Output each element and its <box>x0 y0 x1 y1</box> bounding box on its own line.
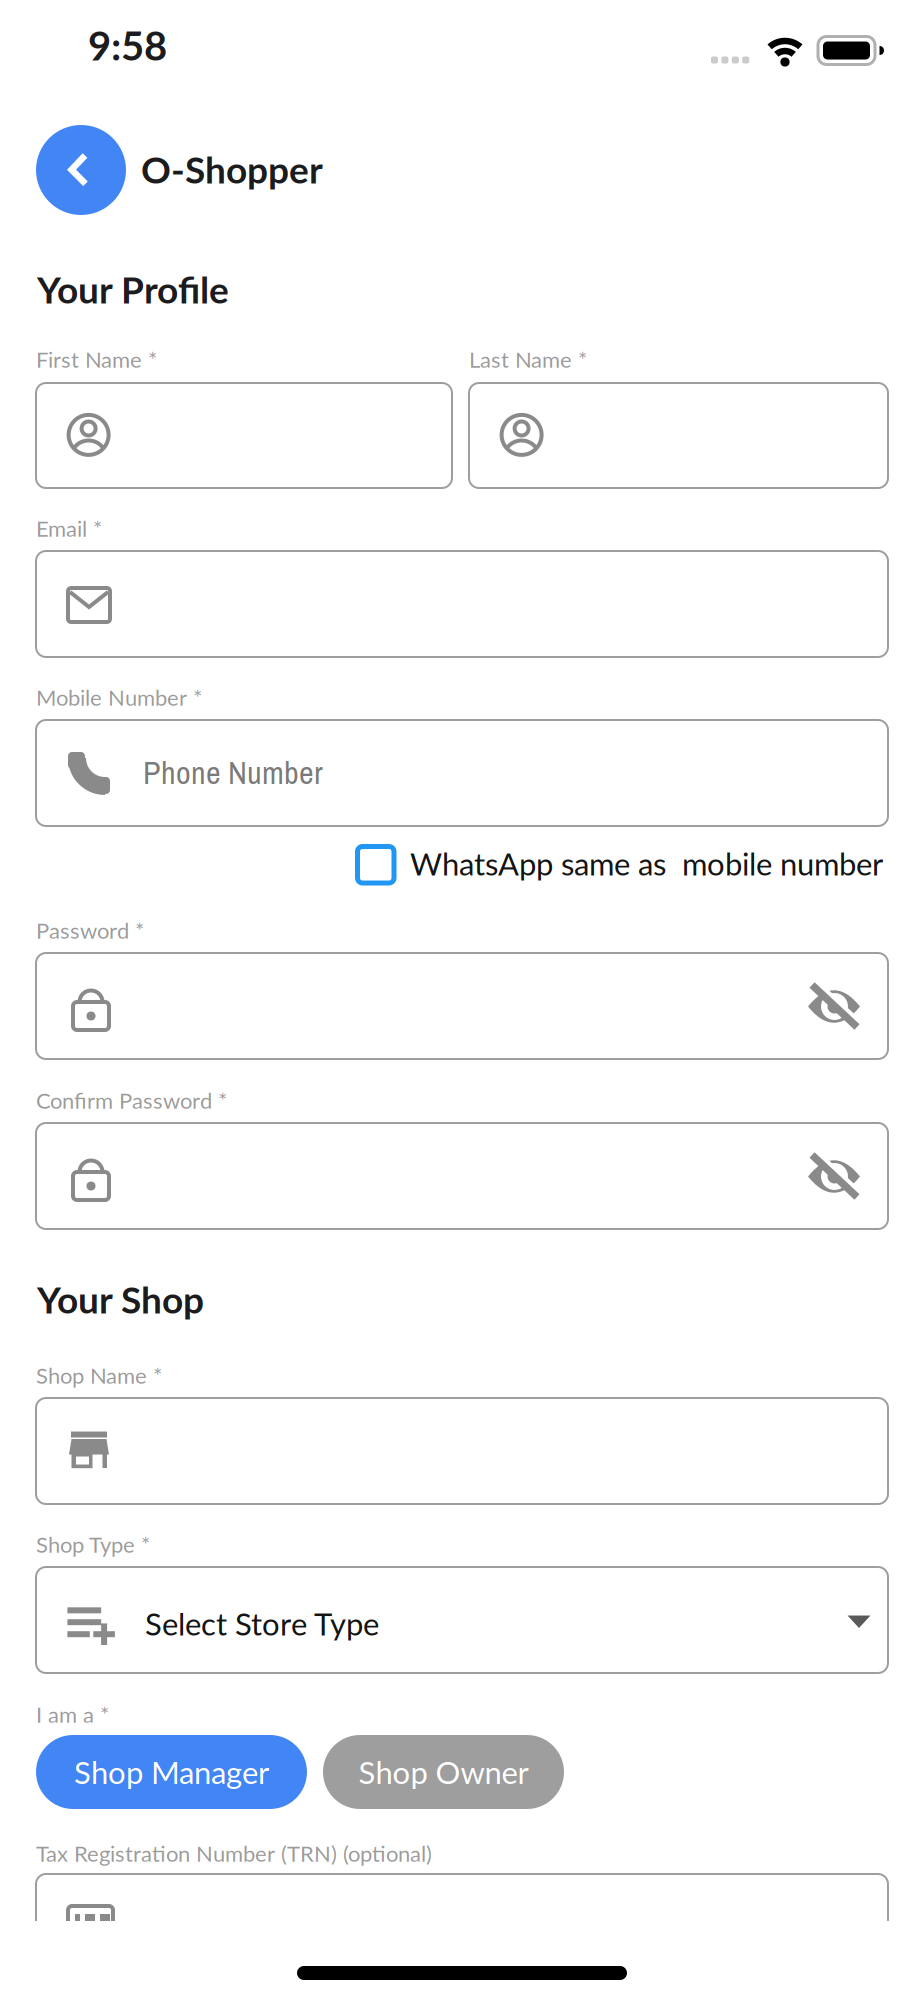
staticText: WhatsApp same as mobile number <box>410 845 883 882</box>
staticText: Shop Type * <box>36 1531 150 1557</box>
staticText: Phone Number <box>143 751 323 794</box>
staticText: Confirm Password * <box>36 1087 227 1113</box>
staticText: Shop Manager <box>74 1753 269 1791</box>
staticText: Mobile Number * <box>36 684 202 710</box>
staticText: Your Shop <box>37 1277 204 1321</box>
staticText: Last Name * <box>469 346 587 372</box>
staticText: Your Profile <box>37 267 229 311</box>
staticText: Select Store Type <box>145 1605 379 1642</box>
staticText: Shop Name * <box>36 1362 162 1388</box>
staticText: Email * <box>36 515 102 541</box>
staticText: Password * <box>36 917 144 943</box>
staticText: 9:58 <box>88 21 167 69</box>
staticText: First Name * <box>36 346 157 372</box>
staticText: Tax Registration Number (TRN) (optional) <box>36 1840 432 1866</box>
staticText: Shop Owner <box>358 1753 528 1791</box>
staticText: I am a * <box>36 1701 109 1727</box>
staticText: O-Shopper <box>141 147 323 191</box>
